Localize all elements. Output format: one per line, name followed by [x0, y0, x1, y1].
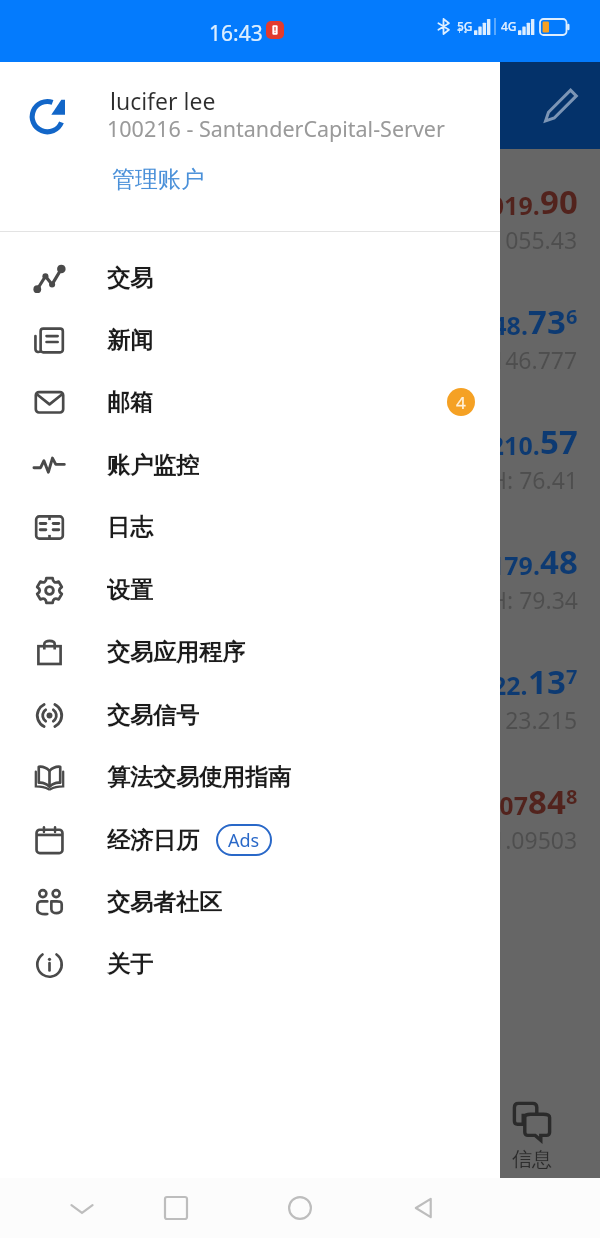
- staticText: 交易应用程序: [107, 638, 245, 667]
- button[interactable]: 交易信号: [0, 684, 500, 746]
- staticText: 信息: [512, 1147, 552, 1172]
- button[interactable]: 交易者社区: [0, 871, 500, 933]
- staticText: 账户监控: [107, 451, 199, 480]
- button[interactable]: Home: [270, 1178, 330, 1238]
- staticText: 7: [566, 663, 578, 690]
- staticText: 6: [566, 303, 578, 330]
- button[interactable]: 交易: [0, 247, 500, 309]
- button[interactable]: 算法交易使用指南: [0, 746, 500, 808]
- staticText: 146.777: [492, 344, 578, 375]
- button[interactable]: Back: [394, 1178, 454, 1238]
- staticText: 90: [540, 179, 578, 224]
- staticText: 73: [528, 299, 566, 344]
- button[interactable]: Recents: [146, 1178, 206, 1238]
- staticText: 算法交易使用指南: [107, 763, 291, 792]
- staticText: 22.: [492, 668, 528, 702]
- staticText: 179.: [490, 548, 540, 582]
- staticText: Ads: [228, 828, 260, 853]
- staticText: 1.09503: [492, 824, 578, 855]
- button[interactable]: 管理账户: [112, 165, 204, 194]
- staticText: 4: [456, 391, 466, 414]
- button[interactable]: 账户监控: [0, 434, 500, 496]
- button[interactable]: 新闻: [0, 309, 500, 371]
- staticText: 2 019.: [469, 188, 540, 222]
- staticText: 48: [540, 539, 578, 584]
- staticText: 日志: [107, 513, 153, 542]
- staticText: 2 055.43: [486, 224, 578, 255]
- staticText: 148.: [478, 308, 528, 342]
- staticText: 交易者社区: [107, 888, 222, 917]
- button[interactable]: 日志: [0, 496, 500, 558]
- staticText: 关于: [107, 950, 153, 979]
- staticText: 57: [540, 419, 578, 464]
- staticText: lucifer lee: [110, 85, 216, 116]
- staticText: 经济日历: [107, 826, 199, 855]
- button[interactable]: 设置: [0, 559, 500, 621]
- staticText: 新闻: [107, 326, 153, 355]
- button[interactable]: Refresh account: [0, 62, 500, 231]
- staticText: ↑↓: [457, 27, 469, 35]
- staticText: 交易信号: [107, 701, 199, 730]
- staticText: 4G: [501, 18, 517, 34]
- button[interactable]: 交易应用程序: [0, 621, 500, 683]
- staticText: 100216 - SantanderCapital-Server: [107, 114, 445, 143]
- staticText: 1 210.: [469, 428, 540, 462]
- staticText: 邮箱: [107, 388, 153, 417]
- staticText: H: 76.41: [490, 464, 578, 495]
- staticText: : 23.215: [493, 704, 578, 735]
- staticText: 84: [528, 779, 566, 824]
- button[interactable]: Hide keyboard: [52, 1178, 112, 1238]
- staticText: 交易: [107, 264, 153, 293]
- button[interactable]: 邮箱: [0, 371, 500, 433]
- button[interactable]: Edit: [536, 82, 584, 130]
- staticText: H: 79.34: [490, 584, 578, 615]
- button[interactable]: 关于: [0, 933, 500, 995]
- staticText: 1.07: [478, 788, 528, 822]
- staticText: 设置: [107, 576, 153, 605]
- staticText: 8: [566, 783, 578, 810]
- staticText: 16:43: [209, 19, 263, 48]
- staticText: 13: [528, 659, 566, 704]
- button[interactable]: Refresh account: [26, 90, 74, 138]
- button[interactable]: 经济日历: [0, 809, 500, 871]
- staticText: 5G: [457, 18, 473, 34]
